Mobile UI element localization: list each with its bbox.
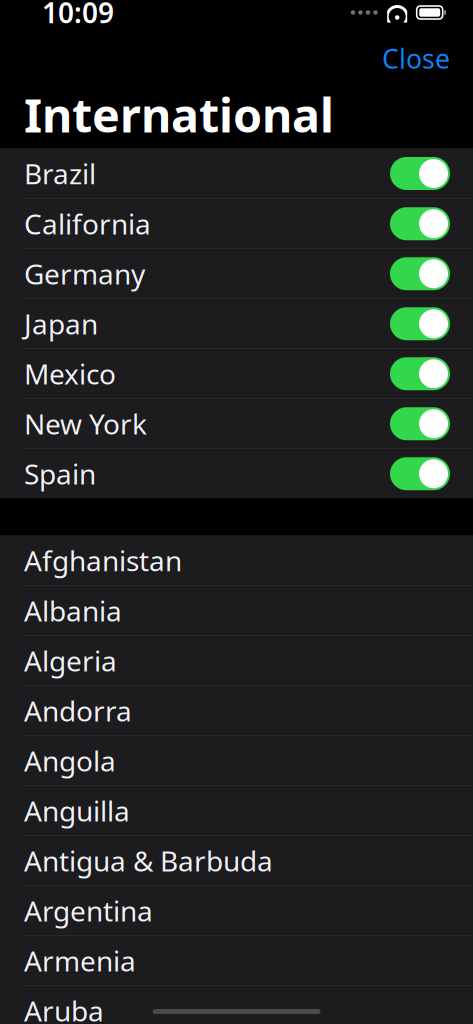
button[interactable]: Armenia — [0, 935, 473, 985]
staticText: Algeria — [24, 642, 117, 679]
staticText: Andorra — [24, 692, 132, 729]
staticText: Brazil — [24, 155, 96, 192]
button[interactable]: Antigua & Barbuda — [0, 835, 473, 885]
button[interactable]: California — [0, 198, 473, 248]
button[interactable]: Germany — [0, 248, 473, 298]
staticText: Mexico — [24, 355, 116, 392]
button[interactable]: Anguilla — [0, 785, 473, 835]
button[interactable]: Algeria — [0, 635, 473, 685]
staticText: Japan — [24, 305, 98, 342]
button[interactable]: Afghanistan — [0, 535, 473, 585]
button[interactable]: Close — [370, 35, 462, 82]
staticText: Angola — [24, 742, 116, 779]
button[interactable]: Japan — [0, 298, 473, 348]
button[interactable]: Angola — [0, 735, 473, 785]
staticText: Argentina — [24, 892, 153, 929]
staticText: Aruba — [24, 992, 104, 1024]
staticText: Spain — [24, 455, 96, 492]
staticText: Anguilla — [24, 792, 130, 829]
button[interactable]: Mexico — [0, 348, 473, 398]
staticText: California — [24, 205, 151, 242]
staticText: Close — [382, 41, 450, 76]
button[interactable]: Argentina — [0, 885, 473, 935]
button[interactable]: Brazil — [0, 148, 473, 198]
button[interactable]: New York — [0, 398, 473, 448]
staticText: Germany — [24, 255, 145, 292]
staticText: Armenia — [24, 942, 136, 979]
button[interactable]: Andorra — [0, 685, 473, 735]
staticText: 10:09 — [42, 0, 114, 31]
staticText: Antigua & Barbuda — [24, 842, 273, 879]
staticText: Afghanistan — [24, 542, 182, 579]
button[interactable]: Spain — [0, 448, 473, 498]
staticText: New York — [24, 405, 147, 442]
staticText: Albania — [24, 592, 122, 629]
button[interactable]: Albania — [0, 585, 473, 635]
button[interactable]: Aruba — [0, 985, 473, 1024]
staticText: International — [24, 83, 334, 145]
